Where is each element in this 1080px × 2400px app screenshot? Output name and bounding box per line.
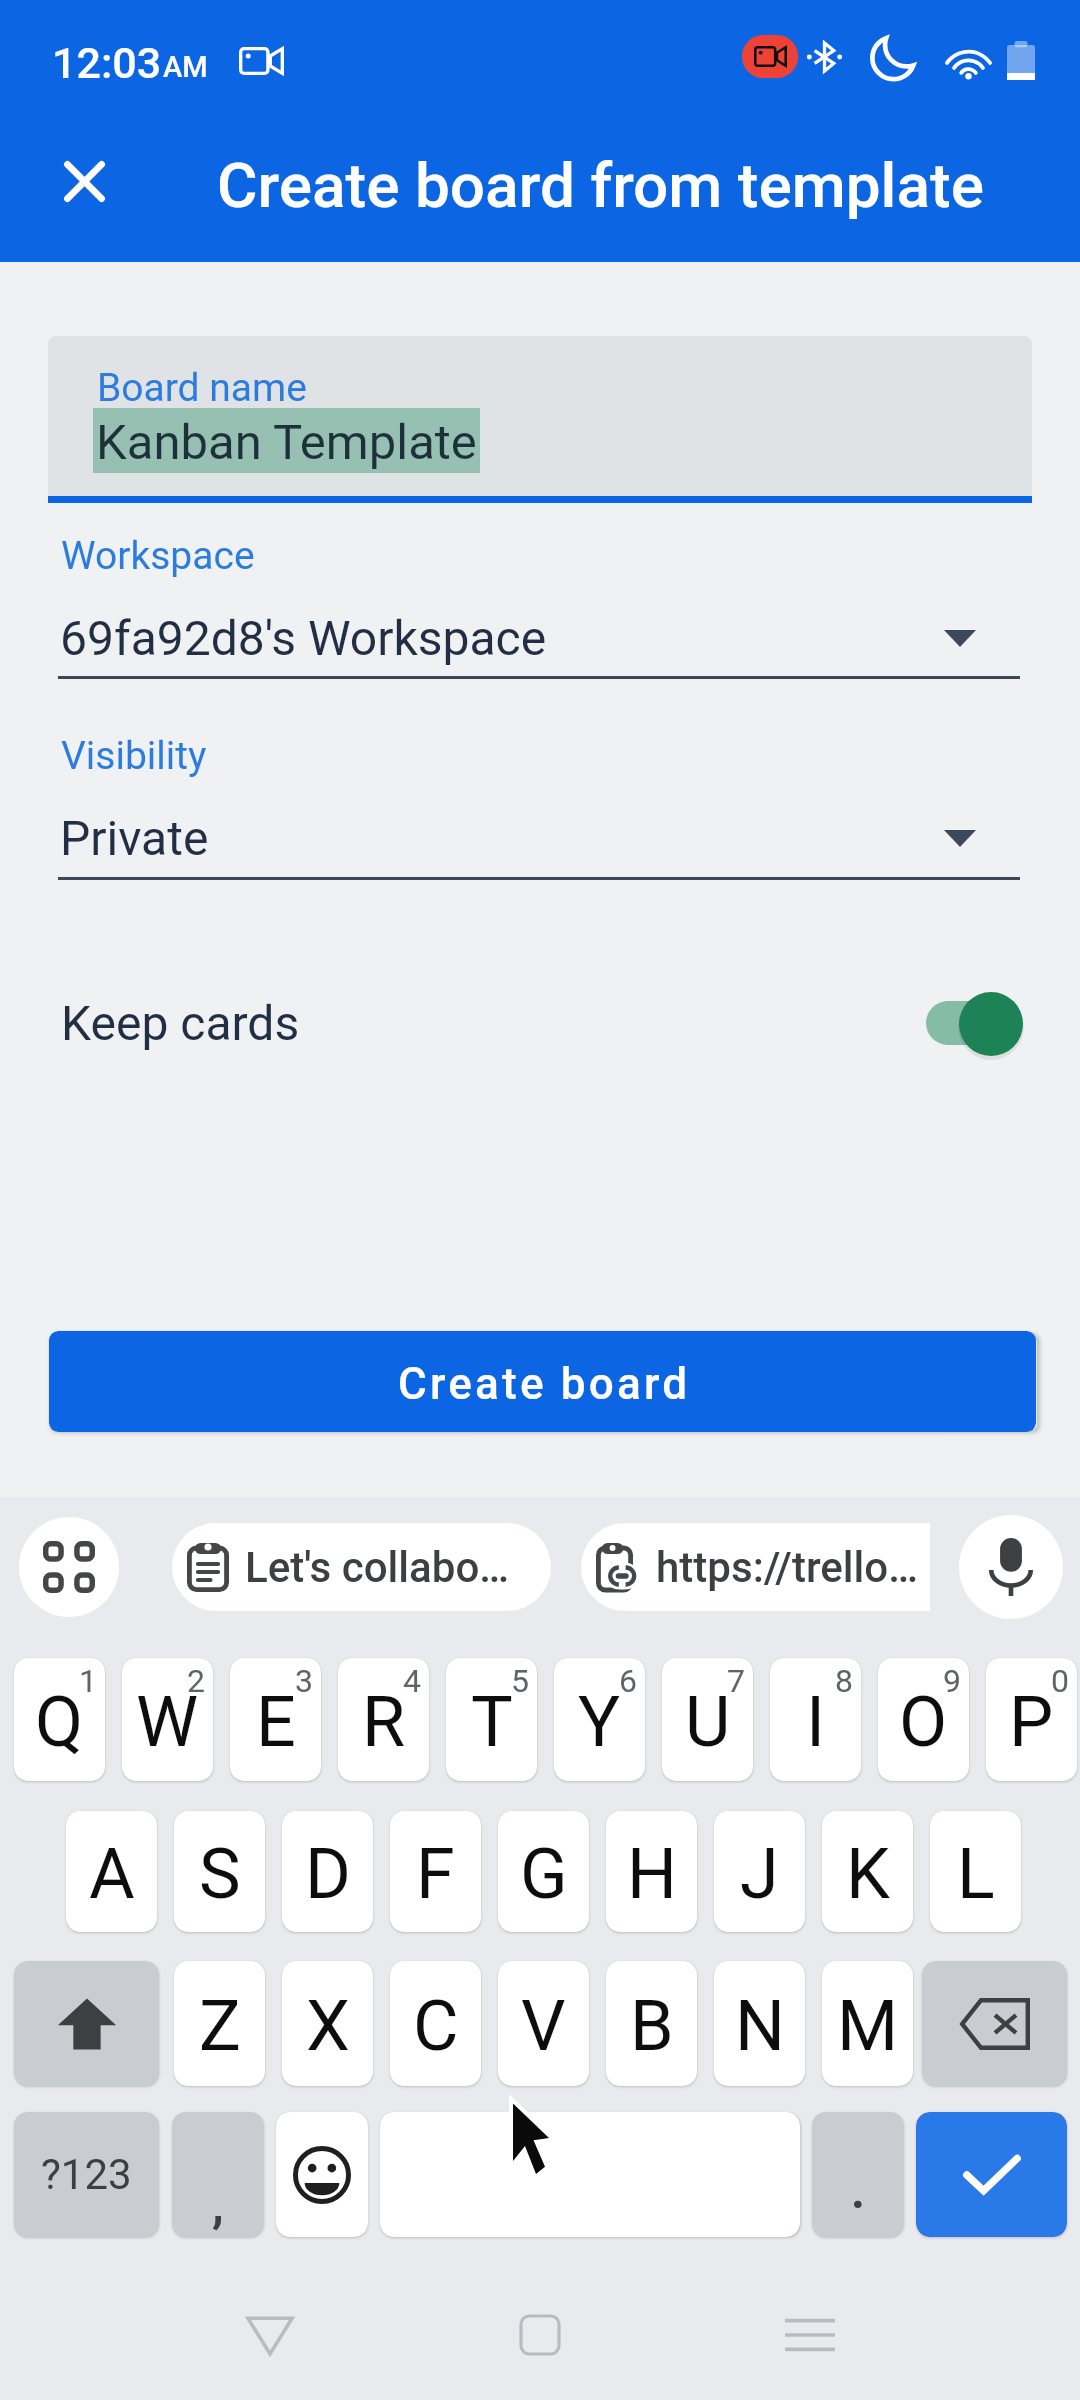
staticText: Board name — [97, 365, 307, 411]
button[interactable]: Voice input — [959, 1515, 1063, 1619]
staticText: B — [630, 1985, 674, 2067]
staticText: U — [685, 1681, 731, 1763]
staticText: Create board from template — [217, 149, 984, 222]
button[interactable]: Z — [174, 1961, 265, 2086]
staticText: A — [89, 1833, 135, 1915]
staticText: H — [627, 1833, 677, 1915]
staticText: 2 — [187, 1662, 205, 1700]
staticText: K — [846, 1833, 890, 1915]
button[interactable]: Period — [812, 2112, 904, 2237]
button[interactable]: Switch keyboard — [19, 1517, 119, 1617]
button[interactable]: 69fa92d8's Workspace — [58, 602, 1020, 674]
button[interactable]: S — [174, 1811, 265, 1932]
staticText: P — [1009, 1681, 1054, 1763]
staticText: 4 — [403, 1662, 421, 1700]
button[interactable]: G — [498, 1811, 589, 1932]
button[interactable]: Recents — [720, 2280, 900, 2390]
button[interactable]: D — [282, 1811, 373, 1932]
button[interactable]: Comma — [172, 2112, 264, 2237]
button[interactable]: Q — [14, 1658, 105, 1781]
staticText: 1 — [79, 1662, 97, 1700]
staticText: Visibility — [61, 733, 207, 779]
staticText: T — [471, 1681, 513, 1763]
staticText: O — [899, 1681, 948, 1763]
staticText: D — [305, 1833, 351, 1915]
staticText: Kanban Template — [96, 414, 477, 471]
staticText: Create board — [398, 1358, 691, 1410]
staticText: 8 — [835, 1662, 853, 1700]
button[interactable]: Keep cards — [58, 978, 1020, 1068]
staticText: https://trello… — [656, 1543, 918, 1592]
staticText: 3 — [295, 1662, 313, 1700]
staticText: . — [851, 2163, 865, 2219]
staticText: 5 — [511, 1662, 529, 1700]
button[interactable]: F — [390, 1811, 481, 1932]
button[interactable]: Backspace — [922, 1961, 1067, 2086]
staticText: Let's collabo… — [245, 1543, 509, 1592]
staticText: J — [740, 1833, 779, 1915]
staticText: Keep cards — [61, 995, 300, 1051]
staticText: Z — [199, 1985, 241, 2067]
button[interactable]: Create board — [49, 1331, 1036, 1432]
button[interactable]: M — [822, 1961, 913, 2086]
button[interactable]: Back — [180, 2280, 360, 2390]
button[interactable]: https://trello… — [581, 1523, 930, 1611]
button[interactable]: O — [878, 1658, 969, 1781]
staticText: Private — [60, 810, 209, 866]
staticText: 0 — [1051, 1662, 1069, 1700]
staticText: ?123 — [41, 2150, 132, 2199]
staticText: Y — [578, 1681, 621, 1763]
button[interactable]: A — [66, 1811, 157, 1932]
button[interactable]: ?123 — [14, 2112, 159, 2237]
button[interactable]: Space — [380, 2112, 800, 2237]
staticText: N — [735, 1985, 785, 2067]
button[interactable]: H — [606, 1811, 697, 1932]
button[interactable]: Shift — [14, 1961, 159, 2086]
staticText: C — [413, 1985, 459, 2067]
button[interactable]: X — [282, 1961, 373, 2086]
button[interactable]: T — [446, 1658, 537, 1781]
button[interactable]: V — [498, 1961, 589, 2086]
staticText: S — [199, 1833, 241, 1915]
button[interactable]: W — [122, 1658, 213, 1781]
staticText: 69fa92d8's Workspace — [60, 610, 547, 666]
button[interactable]: Close — [32, 129, 136, 233]
staticText: AM — [163, 50, 208, 84]
staticText: , — [212, 2177, 224, 2233]
staticText: Workspace — [61, 533, 255, 579]
staticText: Q — [35, 1681, 84, 1763]
button[interactable]: E — [230, 1658, 321, 1781]
button[interactable]: I — [770, 1658, 861, 1781]
staticText: 7 — [727, 1662, 745, 1700]
button[interactable]: R — [338, 1658, 429, 1781]
button[interactable]: Let's collabo… — [172, 1523, 551, 1611]
button[interactable]: U — [662, 1658, 753, 1781]
staticText: 6 — [619, 1662, 637, 1700]
staticText: V — [521, 1985, 566, 2067]
button[interactable]: Y — [554, 1658, 645, 1781]
staticText: W — [136, 1681, 199, 1763]
button[interactable]: Enter — [916, 2112, 1067, 2237]
staticText: L — [957, 1833, 995, 1915]
staticText: M — [837, 1985, 899, 2067]
staticText: F — [416, 1833, 455, 1915]
button[interactable]: Private — [58, 802, 1020, 874]
staticText: 9 — [943, 1662, 961, 1700]
button[interactable]: C — [390, 1961, 481, 2086]
button[interactable]: Emoji — [276, 2112, 368, 2237]
button[interactable]: J — [714, 1811, 805, 1932]
button[interactable]: B — [606, 1961, 697, 2086]
staticText: X — [306, 1985, 350, 2067]
staticText: E — [256, 1681, 296, 1763]
button[interactable]: N — [714, 1961, 805, 2086]
button[interactable]: P — [986, 1658, 1077, 1781]
staticText: R — [362, 1681, 406, 1763]
button[interactable]: K — [822, 1811, 913, 1932]
button[interactable]: Home — [450, 2280, 630, 2390]
staticText: 12:03 — [52, 38, 162, 88]
staticText: I — [806, 1681, 826, 1763]
staticText: G — [520, 1833, 568, 1915]
button[interactable]: L — [930, 1811, 1021, 1932]
button[interactable]: Board name — [48, 336, 1032, 496]
